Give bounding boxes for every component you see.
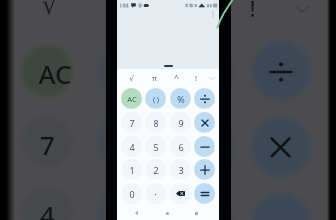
button[interactable]: Minus [194, 136, 215, 157]
staticText: 5 [153, 141, 159, 153]
staticText: 3 [178, 164, 184, 176]
other: Minus [199, 141, 211, 153]
staticText: ! [195, 73, 197, 83]
button[interactable]: Equals [194, 183, 215, 204]
button[interactable]: Power [168, 69, 184, 87]
button[interactable]: 6 [170, 136, 191, 157]
button[interactable]: % [170, 88, 191, 109]
button[interactable]: Backspace [170, 183, 191, 204]
button[interactable]: Multiply [194, 112, 215, 133]
button[interactable]: 7 [121, 112, 142, 133]
staticText: AC [127, 94, 137, 104]
button[interactable]: · [145, 183, 166, 204]
staticText: π [152, 73, 157, 83]
staticText: AC [38, 56, 72, 91]
staticText: 0 [129, 188, 135, 200]
button[interactable]: 5 [145, 136, 166, 157]
button[interactable]: 0 [121, 183, 142, 204]
staticText: 8 [153, 117, 159, 129]
staticText: 4 [129, 141, 135, 153]
button[interactable]: Home [160, 206, 174, 220]
button[interactable]: Plus [194, 159, 215, 180]
button[interactable]: 4 [121, 136, 142, 157]
staticText: √ [129, 74, 134, 83]
button[interactable]: 2 [145, 159, 166, 180]
staticText: √ [41, 0, 59, 20]
staticText: 7 [129, 117, 135, 129]
other: Backspace [176, 191, 185, 196]
button[interactable]: 1 [121, 159, 142, 180]
staticText: · [154, 188, 157, 200]
staticText: 4 [40, 197, 55, 220]
staticText: ( ) [153, 94, 159, 104]
staticText: 7 [40, 127, 55, 162]
other: Multiply [199, 117, 211, 129]
button[interactable]: Square root [123, 69, 139, 87]
staticText: 1 [129, 164, 135, 176]
button[interactable]: Divide [194, 88, 215, 109]
other: Plus [199, 164, 211, 176]
button[interactable]: Factorial [188, 69, 204, 87]
staticText: 2 [153, 164, 159, 176]
staticText: 6 [178, 141, 184, 153]
button[interactable]: 3 [170, 159, 191, 180]
other: Equals [199, 188, 211, 200]
button[interactable]: Back [129, 206, 143, 220]
button[interactable]: AC [121, 88, 142, 109]
staticText: % [177, 93, 185, 105]
button[interactable]: More functions [204, 69, 220, 87]
button[interactable]: 8 [145, 112, 166, 133]
button[interactable]: Pi [146, 69, 162, 87]
button[interactable]: Recent apps [189, 206, 203, 220]
button[interactable]: ( ) [145, 88, 166, 109]
staticText: ^ [174, 72, 179, 84]
button[interactable]: 9 [170, 112, 191, 133]
staticText: ! [249, 0, 256, 23]
other: Divide [199, 93, 211, 105]
staticText: 9 [178, 117, 184, 129]
